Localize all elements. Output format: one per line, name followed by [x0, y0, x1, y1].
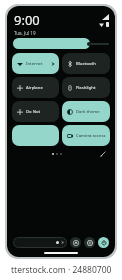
- staticText: Internet: [26, 61, 43, 67]
- staticText: Airplane: [26, 85, 43, 91]
- button[interactable]: Internet: [12, 53, 59, 74]
- staticText: Do Not Disturb: [26, 109, 55, 115]
- button[interactable]: Edit tiles: [99, 150, 107, 158]
- button[interactable]: [12, 125, 59, 146]
- button[interactable]: Bluetooth: [62, 53, 110, 74]
- button[interactable]: Flashlight: [62, 77, 110, 98]
- button[interactable]: User: [70, 237, 81, 248]
- button[interactable]: Brightness: [13, 38, 109, 49]
- button[interactable]: [13, 237, 67, 248]
- button[interactable]: Camera access: [62, 125, 110, 146]
- button[interactable]: Dark theme: [62, 101, 110, 122]
- staticText: Camera access: [76, 133, 106, 139]
- staticText: Dark theme: [76, 109, 100, 115]
- staticText: 9:00: [14, 11, 40, 29]
- staticText: Tue, Jul 19: [14, 30, 36, 36]
- button[interactable]: Settings: [84, 237, 95, 248]
- button[interactable]: Do Not Disturb: [12, 101, 59, 122]
- staticText: tterstock.com · 24880700: [11, 264, 112, 276]
- staticText: Bluetooth: [76, 61, 96, 67]
- staticText: Flashlight: [76, 85, 96, 91]
- button[interactable]: Power: [98, 237, 109, 248]
- button[interactable]: Airplane: [12, 77, 59, 98]
